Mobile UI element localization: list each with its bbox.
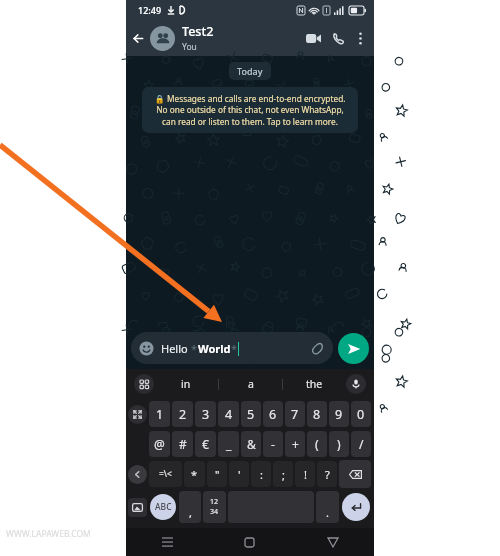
button[interactable]: Backspace [339, 460, 371, 488]
button[interactable]: Numbers [203, 491, 226, 523]
button[interactable]: ' [229, 461, 249, 487]
button[interactable]: Resize keyboard [128, 405, 147, 424]
button[interactable]: ! [295, 461, 315, 487]
staticText: 6 [269, 406, 277, 423]
staticText: @ [154, 436, 165, 452]
staticText: in [181, 377, 191, 391]
staticText: * [231, 341, 238, 356]
button[interactable]: Back [126, 20, 150, 56]
staticText: 9 [335, 406, 343, 423]
staticText: WWW.LAPAWEB.COM [6, 528, 91, 540]
staticText: World [198, 341, 231, 356]
button[interactable]: + [285, 431, 305, 457]
staticText: / [359, 436, 364, 452]
button[interactable]: Previous symbols [128, 465, 147, 484]
staticText: 4 [225, 406, 233, 423]
button[interactable]: - [263, 431, 283, 457]
staticText: & [247, 436, 256, 452]
button[interactable]: Video call [300, 20, 326, 56]
button[interactable]: € [195, 431, 216, 457]
staticText: _ [226, 436, 232, 452]
staticText: 8 [313, 406, 321, 423]
button[interactable]: 7 [285, 401, 305, 427]
button[interactable]: * [184, 461, 205, 487]
staticText: 12:49 [138, 4, 162, 16]
button[interactable]: 🔒 Messages and calls are end-to-end encr… [142, 87, 358, 133]
staticText: ABC [155, 501, 172, 513]
button[interactable]: 6 [263, 401, 283, 427]
staticText: 3 [202, 406, 210, 423]
button[interactable]: ) [329, 431, 349, 457]
staticText: the [306, 377, 323, 391]
button[interactable]: Call [326, 20, 350, 56]
staticText: a [248, 377, 254, 391]
button[interactable]: @ [149, 431, 170, 457]
staticText: ; [282, 467, 285, 482]
button[interactable]: Home [208, 528, 291, 556]
staticText: 7 [291, 406, 299, 423]
button[interactable]: Today [229, 62, 271, 80]
button[interactable]: Sticker [128, 498, 147, 517]
staticText: 34 [210, 507, 219, 517]
staticText: 12 [210, 497, 219, 507]
staticText: * [191, 467, 198, 482]
staticText: ' [238, 467, 241, 482]
button[interactable]: 3 [195, 401, 216, 427]
button[interactable]: Recent apps [126, 528, 208, 556]
button[interactable]: & [241, 431, 261, 457]
staticText: 1 [156, 406, 164, 423]
button[interactable]: " [207, 461, 227, 487]
staticText: ( [315, 436, 319, 452]
button[interactable]: Send [338, 333, 369, 364]
button[interactable]: ; [273, 461, 293, 487]
staticText: : [260, 467, 263, 482]
button[interactable]: 5 [241, 401, 261, 427]
staticText: * [191, 341, 198, 356]
staticText: ) [337, 436, 341, 452]
button[interactable]: the [283, 369, 346, 399]
button[interactable]: 1 [149, 401, 170, 427]
staticText: # [179, 436, 187, 452]
staticText: ? [325, 467, 330, 482]
button[interactable]: Test2 [150, 20, 300, 56]
staticText: + [292, 436, 299, 452]
button[interactable]: ABC [150, 494, 176, 520]
button[interactable]: _ [218, 431, 239, 457]
button[interactable]: 9 [329, 401, 349, 427]
staticText: 🔒 Messages and calls are end-to-end encr… [151, 93, 349, 127]
button[interactable]: 0 [351, 401, 371, 427]
button[interactable]: =\< [149, 461, 182, 487]
staticText: Hello [161, 341, 191, 356]
button[interactable]: . [316, 491, 339, 523]
button[interactable]: 4 [218, 401, 239, 427]
staticText: You [182, 41, 197, 53]
staticText: " [215, 467, 220, 482]
staticText: - [271, 436, 275, 452]
staticText: Today [237, 65, 263, 77]
button[interactable]: : [251, 461, 271, 487]
staticText: . [326, 505, 329, 520]
button[interactable]: a [219, 369, 282, 399]
button[interactable]: Voice input [346, 374, 366, 394]
button[interactable]: More options [350, 20, 370, 56]
button[interactable]: / [351, 431, 371, 457]
button[interactable]: Hello [131, 332, 333, 364]
staticText: 0 [357, 406, 365, 423]
button[interactable]: , [179, 491, 201, 523]
button[interactable]: ( [307, 431, 327, 457]
button[interactable]: # [172, 431, 193, 457]
staticText: =\< [159, 468, 172, 480]
button[interactable]: Back [291, 528, 374, 556]
button[interactable]: 8 [307, 401, 327, 427]
staticText: , [189, 505, 192, 520]
button[interactable]: ? [317, 461, 337, 487]
button[interactable]: 2 [172, 401, 193, 427]
button[interactable]: in [154, 369, 218, 399]
button[interactable]: Attach [311, 341, 325, 355]
button[interactable]: Clipboard [134, 374, 154, 394]
staticText: ! [304, 467, 307, 482]
staticText: 5 [247, 406, 255, 423]
button[interactable]: Enter [342, 493, 370, 521]
staticText: € [202, 436, 209, 452]
